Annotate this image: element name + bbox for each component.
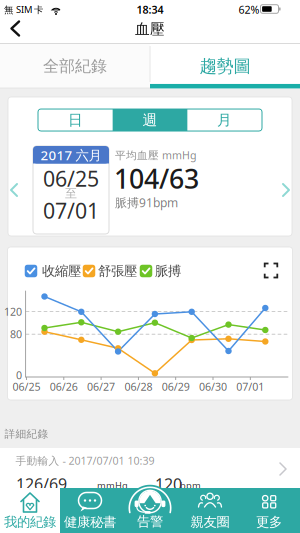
staticText: 至: [65, 186, 77, 201]
staticText: 07/01: [236, 379, 264, 394]
button[interactable]: 健康秘書: [60, 488, 120, 533]
staticText: 詳細紀錄: [4, 427, 48, 440]
button[interactable]: 日: [39, 110, 112, 130]
staticText: 120: [155, 473, 182, 495]
button[interactable]: Fullscreen chart: [260, 259, 282, 281]
staticText: 告警: [137, 513, 163, 530]
staticText: 104/63: [114, 161, 199, 196]
staticText: 06/27: [87, 379, 115, 394]
button[interactable]: Previous week: [4, 175, 24, 205]
staticText: 舒張壓: [98, 263, 137, 279]
button[interactable]: 趨勢圖: [150, 44, 300, 88]
button[interactable]: 週: [113, 109, 187, 131]
staticText: 126/69: [16, 473, 67, 495]
staticText: 06/30: [199, 379, 227, 394]
staticText: 親友圈: [190, 514, 229, 530]
button[interactable]: 我的紀錄: [0, 488, 60, 533]
staticText: 62%: [238, 2, 259, 17]
staticText: 收縮壓: [42, 263, 81, 279]
staticText: 脈搏91bpm: [115, 194, 178, 210]
button[interactable]: 月: [188, 110, 261, 130]
button[interactable]: [0, 448, 300, 490]
staticText: 06/28: [124, 379, 152, 394]
staticText: mmHg: [97, 479, 128, 492]
staticText: 無 SIM 卡: [4, 3, 43, 16]
staticText: 更多: [256, 514, 282, 530]
staticText: 07/01: [43, 196, 99, 225]
button[interactable]: 全部紀錄: [0, 44, 150, 88]
staticText: 0: [16, 368, 22, 382]
staticText: 週: [142, 111, 157, 129]
staticText: 06/26: [50, 379, 78, 394]
staticText: 全部紀錄: [43, 56, 107, 76]
staticText: 健康秘書: [64, 514, 116, 530]
staticText: 血壓: [135, 20, 165, 38]
button[interactable]: 舒張壓: [83, 265, 95, 277]
staticText: 120: [4, 304, 22, 319]
staticText: bpm: [180, 479, 201, 492]
staticText: 脈搏: [155, 263, 181, 279]
staticText: 平均血壓 mmHg: [115, 148, 197, 162]
staticText: 06/25: [43, 164, 99, 193]
staticText: 我的紀錄: [4, 514, 56, 530]
staticText: 月: [217, 111, 232, 129]
button[interactable]: 親友圈: [180, 488, 240, 533]
staticText: 手動輸入 - 2017/07/01 10:39: [15, 453, 154, 468]
staticText: 80: [10, 327, 22, 341]
staticText: 日: [68, 111, 83, 129]
button[interactable]: Next week: [276, 175, 296, 205]
button[interactable]: 更多: [240, 488, 300, 533]
button[interactable]: 收縮壓: [25, 265, 37, 277]
staticText: 2017 六月: [40, 146, 101, 164]
staticText: 06/29: [162, 379, 190, 394]
button[interactable]: 告警: [120, 488, 240, 533]
staticText: 18:34: [136, 2, 163, 17]
button[interactable]: Back: [0, 15, 36, 41]
staticText: 趨勢圖: [199, 56, 250, 77]
staticText: 06/25: [12, 379, 40, 394]
button[interactable]: 脈搏: [140, 265, 152, 277]
